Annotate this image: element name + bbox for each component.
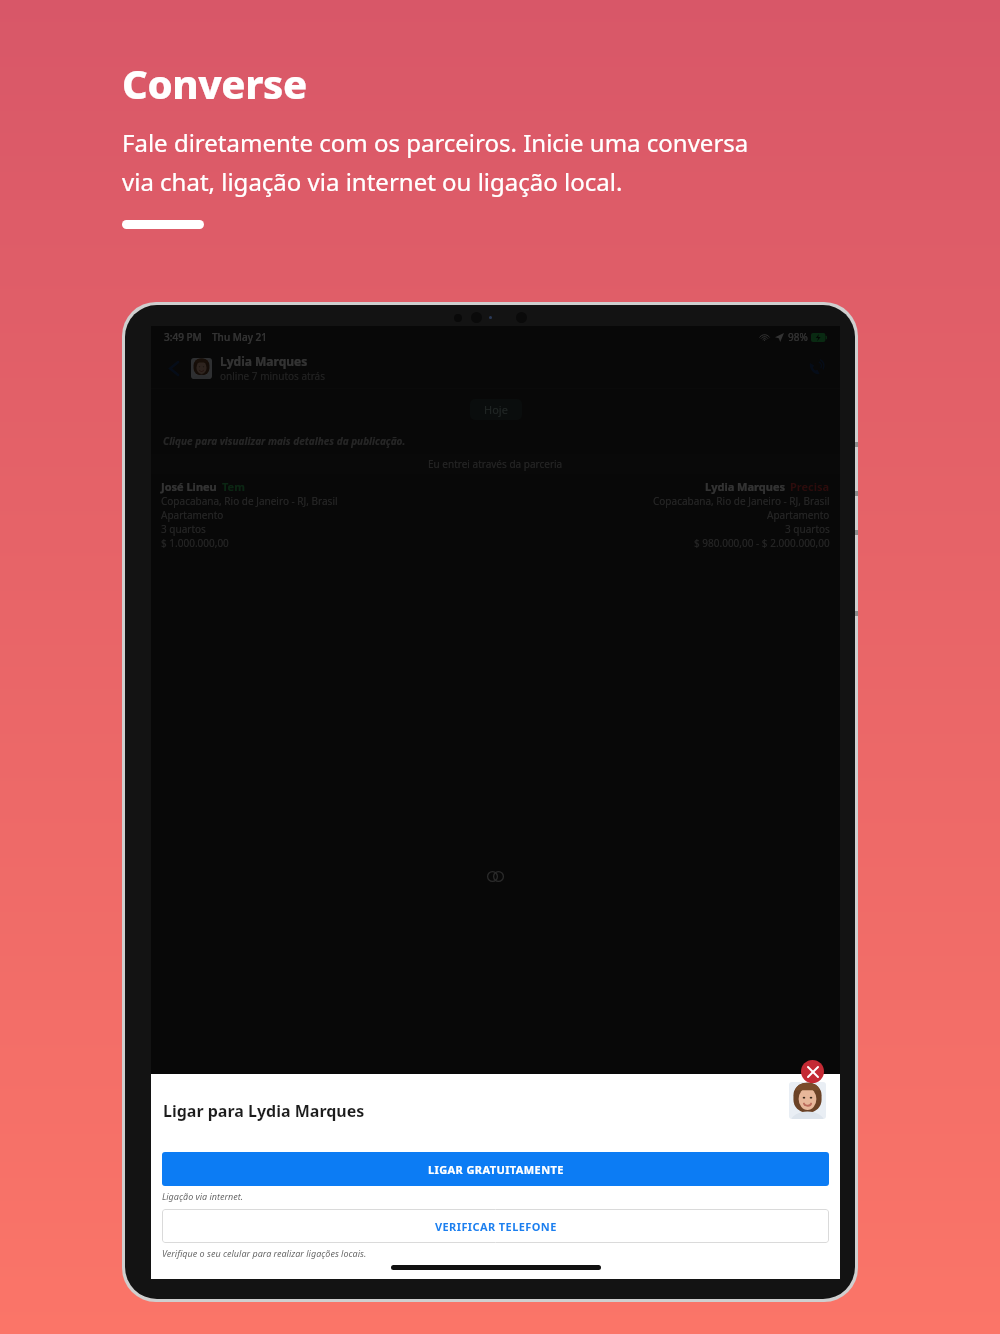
staticText: Copacabana, Rio de Janeiro - RJ, Brasil — [161, 494, 338, 508]
staticText: Copacabana, Rio de Janeiro - RJ, Brasil — [653, 494, 830, 508]
staticText: Lydia Marques — [705, 479, 785, 494]
staticText: Apartamento — [767, 508, 830, 522]
staticText: 3 quartos — [785, 522, 830, 536]
staticText: Fale diretamente com os parceiros. Inici… — [122, 126, 749, 159]
staticText: Lydia Marques — [220, 353, 308, 369]
staticText: 3 quartos — [161, 522, 206, 536]
staticText: Tem — [222, 479, 245, 494]
staticText: VERIFICAR TELEFONE — [435, 1219, 557, 1234]
button[interactable]: LIGAR GRATUITAMENTE — [162, 1152, 829, 1186]
staticText: Eu entrei através da parceria — [428, 457, 563, 471]
staticText: Ligar para Lydia Marques — [163, 1100, 365, 1122]
staticText: $ 1.000.000,00 — [161, 536, 229, 550]
staticText: Converse — [122, 56, 307, 110]
staticText: Hoje — [484, 402, 508, 417]
button[interactable]: VERIFICAR TELEFONE — [162, 1209, 829, 1243]
staticText: Thu May 21 — [212, 330, 267, 344]
staticText: $ 980.000,00 - $ 2.000.000,00 — [694, 536, 830, 550]
staticText: Ligação via internet. — [162, 1190, 244, 1202]
button[interactable]: Voltar — [161, 355, 187, 381]
staticText: José Lineu — [161, 479, 217, 494]
staticText: Verifique o seu celular para realizar li… — [162, 1247, 367, 1259]
staticText: LIGAR GRATUITAMENTE — [428, 1162, 564, 1177]
button[interactable]: Ligar — [802, 354, 830, 382]
staticText: Apartamento — [161, 508, 224, 522]
staticText: Clique para visualizar mais detalhes da … — [163, 434, 406, 448]
staticText: via chat, ligação via internet ou ligaçã… — [122, 165, 623, 198]
staticText: online 7 minutos atrás — [220, 369, 326, 383]
staticText: 98% — [788, 330, 808, 344]
staticText: Precisa — [790, 479, 830, 494]
staticText: 3:49 PM — [164, 330, 202, 344]
button[interactable]: Fechar — [801, 1060, 824, 1083]
